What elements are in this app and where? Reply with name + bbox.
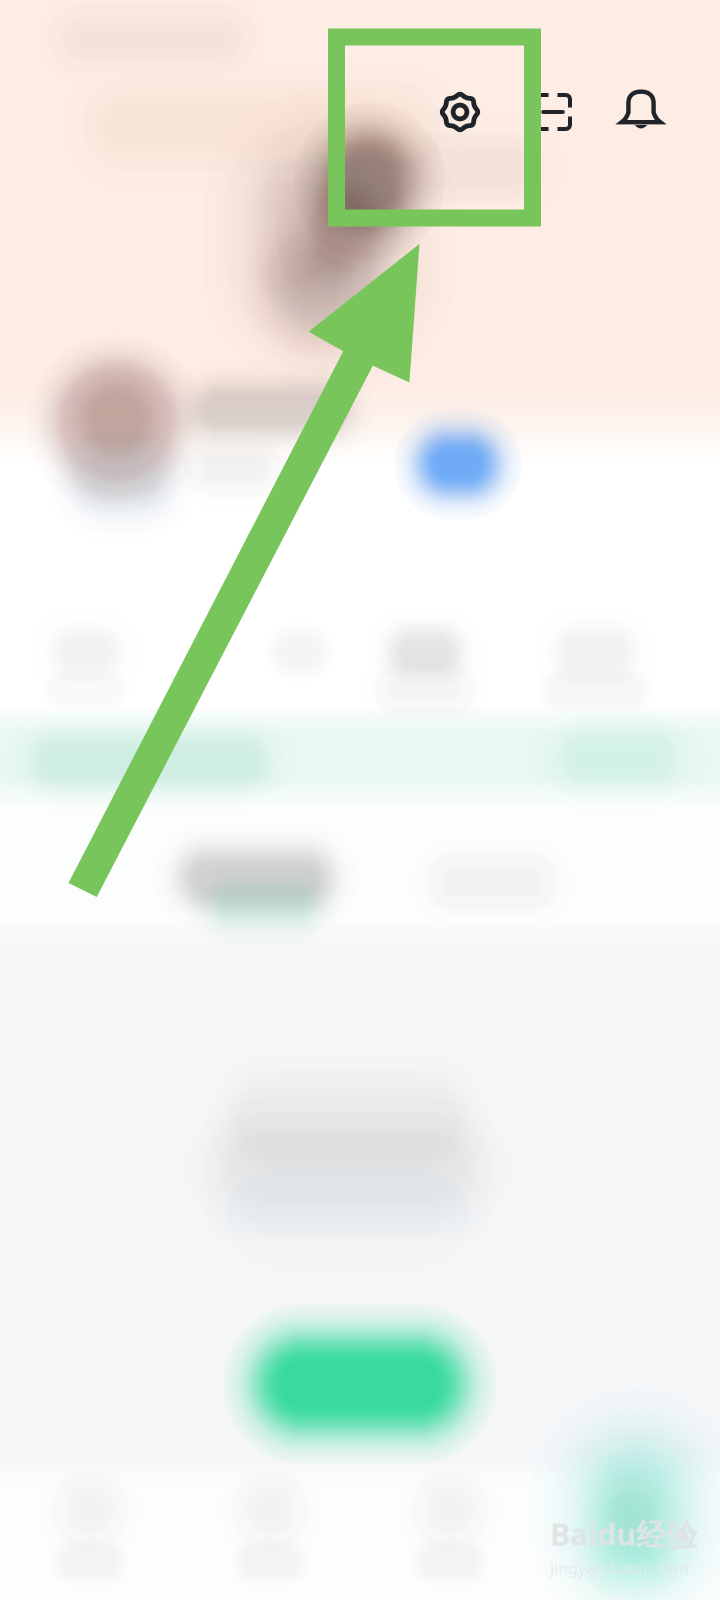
- staticText: Baidu经验: [550, 1513, 698, 1554]
- button[interactable]: Settings: [417, 69, 503, 155]
- button[interactable]: Scan: [510, 69, 596, 155]
- staticText: jingyan.baidu.com: [550, 1557, 689, 1578]
- button[interactable]: Primary action: [223, 1304, 497, 1464]
- button[interactable]: Tab: [0, 0, 720, 1600]
- button[interactable]: Tab: [0, 0, 720, 1600]
- button[interactable]: Notifications: [598, 67, 684, 153]
- button[interactable]: Profile tab: [0, 0, 720, 1600]
- button[interactable]: Tab: [0, 0, 720, 1600]
